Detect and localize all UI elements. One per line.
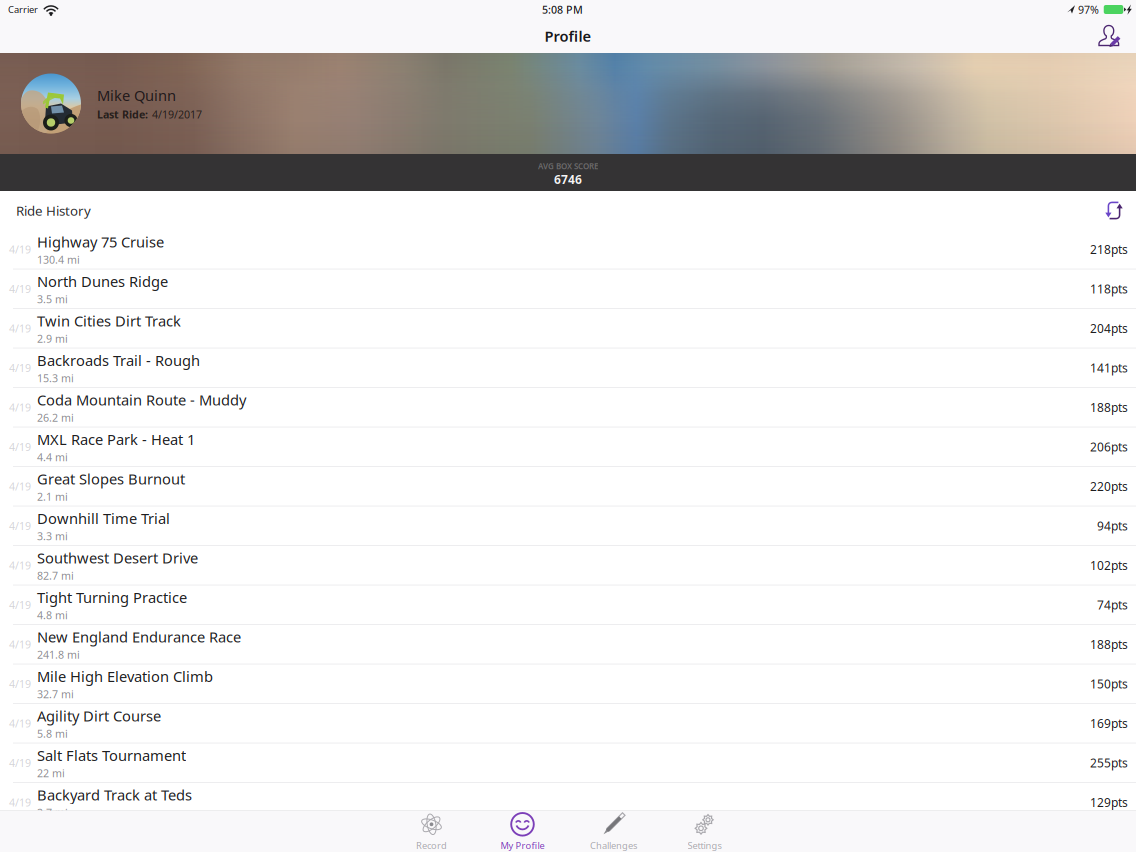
staticText: Record: [416, 839, 447, 852]
staticText: Settings: [687, 839, 721, 852]
staticText: 32.7 mi: [37, 687, 74, 701]
staticText: North Dunes Ridge: [37, 271, 168, 291]
staticText: 6746: [554, 171, 582, 187]
button[interactable]: Refresh: [1104, 200, 1124, 221]
button[interactable]: 4/19: [0, 427, 1136, 467]
staticText: Ride History: [16, 202, 91, 219]
staticText: 220pts: [1090, 478, 1128, 494]
button[interactable]: 4/19: [0, 506, 1136, 546]
button[interactable]: 4/19: [0, 625, 1136, 664]
staticText: 4/19: [9, 242, 31, 256]
staticText: Profile: [544, 26, 591, 46]
staticText: Twin Cities Dirt Track: [37, 311, 181, 330]
button[interactable]: 4/19: [0, 585, 1136, 625]
staticText: 129pts: [1090, 794, 1128, 810]
button[interactable]: 4/19: [0, 704, 1136, 743]
staticText: 15.3 mi: [37, 371, 74, 385]
staticText: 4/19: [9, 282, 31, 296]
staticText: 4/19: [9, 637, 31, 651]
staticText: 4.4 mi: [37, 450, 68, 464]
button[interactable]: Record: [386, 811, 477, 852]
staticText: 4/19: [9, 519, 31, 533]
staticText: Salt Flats Tournament: [37, 745, 186, 765]
button[interactable]: 4/19: [0, 230, 1136, 269]
button[interactable]: 4/19: [0, 388, 1136, 427]
staticText: 82.7 mi: [37, 568, 74, 583]
staticText: 4/19/2017: [152, 107, 202, 121]
staticText: 241.8 mi: [37, 647, 80, 662]
staticText: 4/19: [9, 400, 31, 414]
staticText: MXL Race Park - Heat 1: [37, 429, 195, 449]
staticText: Tight Turning Practice: [37, 587, 187, 607]
staticText: 204pts: [1090, 320, 1128, 336]
staticText: 206pts: [1090, 439, 1128, 455]
staticText: Carrier: [8, 3, 38, 16]
staticText: Downhill Time Trial: [37, 508, 170, 528]
button[interactable]: 4/19: [0, 467, 1136, 506]
staticText: 255pts: [1090, 755, 1128, 771]
staticText: 4/19: [9, 558, 31, 572]
staticText: Mike Quinn: [97, 86, 176, 105]
staticText: 141pts: [1090, 360, 1128, 376]
staticText: Challenges: [590, 839, 637, 852]
staticText: 118pts: [1090, 281, 1128, 297]
staticText: 4/19: [9, 440, 31, 454]
button[interactable]: 4/19: [0, 743, 1136, 783]
staticText: 5:08 PM: [542, 2, 583, 17]
staticText: 94pts: [1097, 518, 1128, 534]
staticText: Great Slopes Burnout: [37, 469, 185, 488]
staticText: Mile High Elevation Climb: [37, 666, 213, 686]
button[interactable]: 4/19: [0, 546, 1136, 585]
staticText: Southwest Desert Drive: [37, 548, 198, 567]
staticText: 97%: [1078, 2, 1099, 17]
staticText: 4/19: [9, 479, 31, 493]
button[interactable]: 4/19: [0, 309, 1136, 348]
staticText: Coda Mountain Route - Muddy: [37, 390, 246, 409]
staticText: 4/19: [9, 795, 31, 809]
staticText: 4/19: [9, 361, 31, 375]
staticText: 188pts: [1090, 399, 1128, 415]
button[interactable]: 4/19: [0, 783, 1136, 822]
staticText: 4/19: [9, 321, 31, 335]
staticText: 2.1 mi: [37, 489, 68, 504]
button[interactable]: 4/19: [0, 348, 1136, 388]
staticText: 74pts: [1097, 597, 1128, 613]
staticText: 3.3 mi: [37, 529, 68, 543]
staticText: 26.2 mi: [37, 410, 74, 425]
staticText: 188pts: [1090, 636, 1128, 652]
staticText: 2.7 mi: [37, 805, 68, 820]
staticText: Backroads Trail - Rough: [37, 350, 200, 370]
staticText: 169pts: [1090, 715, 1128, 731]
staticText: 4/19: [9, 716, 31, 730]
staticText: 4/19: [9, 598, 31, 612]
staticText: 5.8 mi: [37, 726, 68, 741]
staticText: My Profile: [500, 839, 544, 852]
button[interactable]: 4/19: [0, 664, 1136, 704]
staticText: AVG BOX SCORE: [538, 161, 598, 171]
button[interactable]: Challenges: [568, 811, 659, 852]
button[interactable]: Settings: [659, 811, 750, 852]
button[interactable]: My Profile: [477, 811, 568, 852]
staticText: 102pts: [1090, 557, 1128, 573]
staticText: 2.9 mi: [37, 331, 68, 346]
staticText: 3.5 mi: [37, 292, 68, 306]
staticText: 4.8 mi: [37, 608, 68, 622]
staticText: 22 mi: [37, 766, 65, 780]
staticText: 4/19: [9, 677, 31, 691]
staticText: New England Endurance Race: [37, 627, 241, 646]
button[interactable]: Edit Profile: [1091, 21, 1128, 50]
staticText: Backyard Track at Teds: [37, 785, 192, 804]
staticText: 218pts: [1090, 241, 1128, 257]
staticText: Last Ride:: [97, 107, 148, 121]
button[interactable]: 4/19: [0, 269, 1136, 309]
staticText: Highway 75 Cruise: [37, 232, 164, 251]
staticText: 130.4 mi: [37, 252, 80, 267]
staticText: 150pts: [1090, 676, 1128, 692]
staticText: 4/19: [9, 756, 31, 770]
staticText: Agility Dirt Course: [37, 706, 161, 725]
